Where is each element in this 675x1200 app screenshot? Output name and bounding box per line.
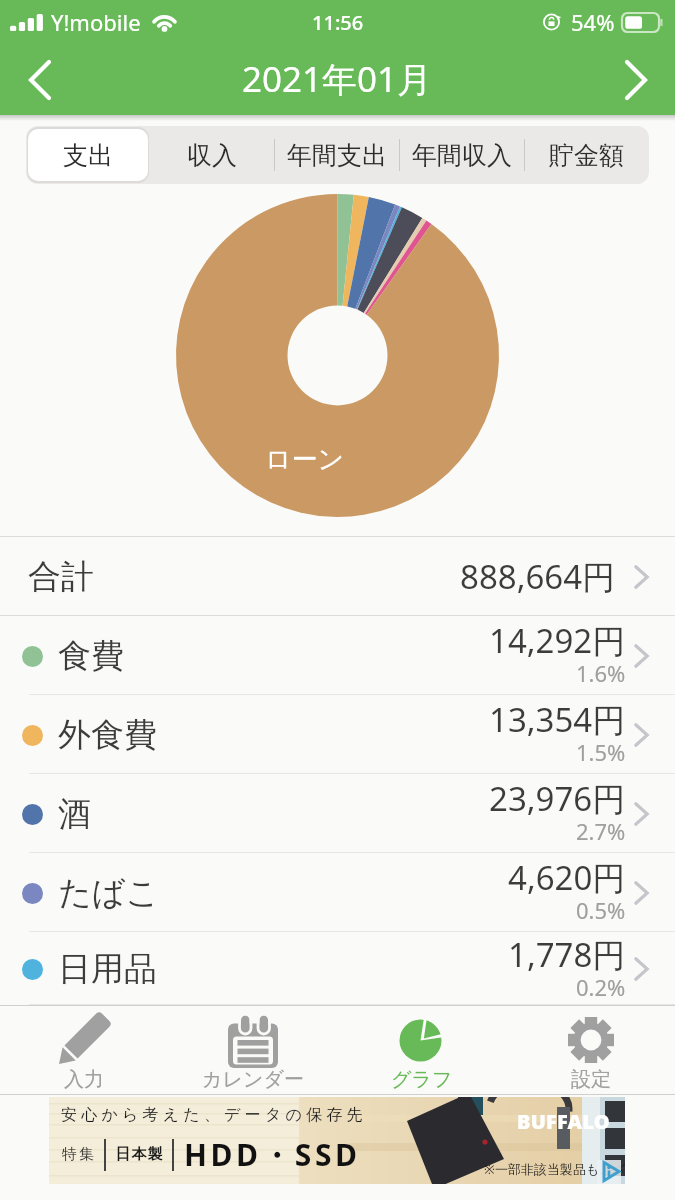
button[interactable]: 日用品: [0, 932, 675, 1005]
button[interactable]: Next month: [596, 44, 675, 115]
button[interactable]: 外食費: [0, 695, 675, 774]
staticText: 1.5%: [576, 737, 626, 767]
staticText: 日本製: [115, 1145, 163, 1164]
staticText: 年間支出: [287, 140, 387, 171]
staticText: 0.5%: [576, 895, 626, 925]
button[interactable]: カレンダー: [168, 1005, 337, 1095]
staticText: 酒: [58, 793, 91, 835]
staticText: 54%: [571, 7, 615, 37]
staticText: 外食費: [58, 714, 157, 756]
staticText: グラフ: [391, 1067, 453, 1092]
button[interactable]: 年間収入: [399, 126, 524, 184]
staticText: 安心から考えた、データの保存先: [61, 1105, 367, 1125]
button[interactable]: 酒: [0, 774, 675, 853]
staticText: 貯金額: [549, 140, 624, 171]
button[interactable]: 入力: [0, 1005, 168, 1095]
staticText: 1,778円: [508, 932, 626, 977]
staticText: ローン: [265, 443, 345, 476]
button[interactable]: 合計: [0, 537, 675, 616]
staticText: 11:56: [312, 9, 364, 36]
button[interactable]: Advertisement: [49, 1097, 625, 1184]
staticText: 支出: [63, 140, 113, 171]
button[interactable]: 年間支出: [274, 126, 399, 184]
staticText: たばこ: [58, 872, 160, 914]
button[interactable]: 収入: [150, 126, 274, 184]
button[interactable]: 支出: [26, 126, 150, 184]
staticText: 13,354円: [489, 697, 626, 742]
staticText: BUFFALO: [517, 1108, 610, 1135]
staticText: カレンダー: [202, 1067, 304, 1092]
staticText: 0.2%: [576, 972, 626, 1000]
staticText: 収入: [187, 140, 237, 171]
staticText: 14,292円: [489, 618, 626, 663]
staticText: ※一部非該当製品もございます: [484, 1160, 625, 1178]
staticText: 23,976円: [489, 776, 626, 821]
button[interactable]: たばこ: [0, 853, 675, 932]
staticText: 2021年01月: [242, 55, 433, 103]
button[interactable]: 食費: [0, 616, 675, 695]
staticText: 2.7%: [576, 816, 626, 846]
staticText: 合計: [28, 556, 94, 598]
staticText: 特集: [61, 1145, 95, 1164]
staticText: 1.6%: [576, 658, 626, 688]
staticText: 食費: [58, 635, 124, 677]
staticText: Y!mobile: [51, 7, 141, 37]
button[interactable]: 設定: [506, 1005, 675, 1095]
staticText: 入力: [64, 1067, 104, 1092]
staticText: 4,620円: [508, 855, 626, 900]
staticText: 設定: [571, 1067, 611, 1092]
button[interactable]: Previous month: [0, 44, 79, 115]
button[interactable]: グラフ: [337, 1005, 506, 1095]
staticText: 888,664円: [460, 554, 616, 599]
staticText: 日用品: [58, 948, 157, 990]
staticText: HDD・SSD: [184, 1134, 361, 1175]
button[interactable]: 貯金額: [524, 126, 649, 184]
staticText: 年間収入: [412, 140, 512, 171]
